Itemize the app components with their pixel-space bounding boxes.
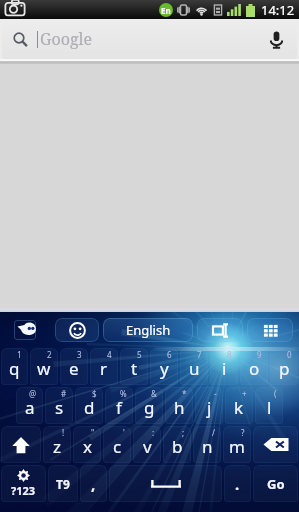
staticText: 7 <box>197 349 202 360</box>
button[interactable]: Space <box>109 465 222 502</box>
button[interactable]: z <box>43 426 71 463</box>
staticText: 2 <box>47 349 52 360</box>
button[interactable]: v <box>133 426 161 463</box>
button[interactable]: Layout <box>197 318 243 342</box>
staticText: m <box>229 435 245 458</box>
staticText: j <box>207 396 212 419</box>
staticText: 0 <box>287 349 292 360</box>
button[interactable]: u <box>180 348 208 385</box>
button[interactable]: Backspace <box>253 426 298 463</box>
staticText: ; <box>182 427 185 438</box>
staticText: c <box>113 435 122 458</box>
staticText: # <box>61 388 67 399</box>
button[interactable]: o <box>240 348 268 385</box>
staticText: w <box>37 357 51 380</box>
staticText: @ <box>29 388 37 399</box>
staticText: ! <box>62 427 65 438</box>
button[interactable]: s <box>45 387 73 424</box>
staticText: : <box>152 427 155 438</box>
button[interactable]: , <box>80 465 107 502</box>
staticText: z <box>53 435 61 458</box>
staticText: , <box>91 474 96 494</box>
staticText: o <box>249 357 260 380</box>
button[interactable]: x <box>73 426 101 463</box>
button[interactable]: w <box>30 348 58 385</box>
staticText: p <box>279 357 290 380</box>
staticText: r <box>100 357 108 380</box>
staticText: " <box>91 427 95 438</box>
button[interactable]: j <box>195 387 223 424</box>
button[interactable]: Emoji <box>55 318 99 342</box>
staticText: ' <box>123 427 125 438</box>
staticText: k <box>234 396 244 419</box>
staticText: i <box>222 357 227 380</box>
staticText: d <box>84 396 95 419</box>
staticText: Go <box>267 475 285 493</box>
staticText: 3 <box>77 349 82 360</box>
button[interactable]: t <box>120 348 148 385</box>
button[interactable]: Go <box>253 465 298 502</box>
button[interactable]: n <box>193 426 221 463</box>
staticText: y <box>160 357 169 380</box>
button[interactable]: T9 <box>48 465 78 502</box>
staticText: b <box>172 435 183 458</box>
staticText: + <box>242 388 247 399</box>
staticText: n <box>202 435 213 458</box>
button[interactable]: e <box>60 348 88 385</box>
button[interactable]: m <box>223 426 251 463</box>
button[interactable]: y <box>150 348 178 385</box>
button[interactable]: k <box>225 387 253 424</box>
staticText: u <box>189 357 200 380</box>
button[interactable]: Theme <box>14 320 36 340</box>
button[interactable]: English <box>103 318 193 342</box>
button[interactable]: a <box>16 387 43 424</box>
staticText: 1 <box>17 349 22 360</box>
button[interactable]: Keypad <box>247 318 293 342</box>
staticText: % <box>120 388 127 399</box>
button[interactable]: i <box>210 348 238 385</box>
button[interactable]: g <box>135 387 163 424</box>
staticText: ( <box>274 388 277 399</box>
staticText: / <box>212 427 215 438</box>
staticText: ? <box>241 427 245 438</box>
staticText: q <box>9 357 20 380</box>
button[interactable]: q <box>1 348 28 385</box>
staticText: a <box>25 396 35 419</box>
button[interactable]: h <box>165 387 193 424</box>
button[interactable]: Voice search <box>255 19 297 59</box>
button[interactable]: p <box>270 348 298 385</box>
button[interactable]: Symbols and settings <box>1 465 46 502</box>
staticText: s <box>55 396 64 419</box>
staticText: v <box>143 435 152 458</box>
staticText: l <box>267 396 272 419</box>
button[interactable]: r <box>90 348 118 385</box>
staticText: 14:12 <box>261 1 295 19</box>
button[interactable]: l <box>255 387 283 424</box>
staticText: 6 <box>167 349 172 360</box>
button[interactable]: c <box>103 426 131 463</box>
staticText: 9 <box>257 349 262 360</box>
staticText: Google <box>40 28 93 50</box>
staticText: $ <box>92 388 97 399</box>
button[interactable]: f <box>105 387 133 424</box>
staticText: 5 <box>137 349 142 360</box>
staticText: 8 <box>227 349 232 360</box>
button[interactable]: Shift <box>1 426 41 463</box>
staticText: T9 <box>56 476 70 492</box>
staticText: x <box>83 435 92 458</box>
staticText: En <box>161 5 171 16</box>
staticText: h <box>174 396 185 419</box>
staticText: g <box>144 396 155 419</box>
staticText: f <box>116 396 122 419</box>
button[interactable]: Google <box>2 19 297 59</box>
staticText: t <box>131 357 138 380</box>
button[interactable]: . <box>224 465 251 502</box>
staticText: & <box>151 388 157 399</box>
staticText: * <box>182 388 187 399</box>
staticText: English <box>126 321 171 339</box>
button[interactable]: b <box>163 426 191 463</box>
staticText: - <box>214 388 217 399</box>
staticText: . <box>235 474 240 494</box>
button[interactable]: d <box>75 387 103 424</box>
staticText: e <box>69 357 79 380</box>
